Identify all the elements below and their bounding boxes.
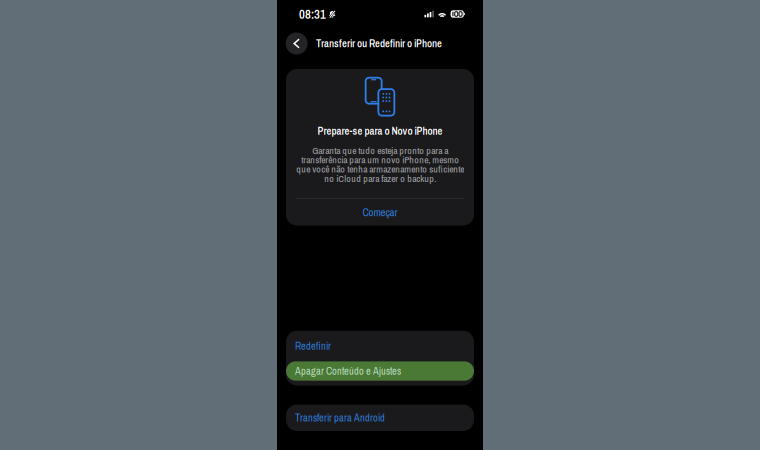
staticText: Transferir ou Redefinir o iPhone	[316, 36, 442, 51]
staticText: Começar	[362, 205, 397, 219]
staticText: Prepare-se para o Novo iPhone	[317, 124, 442, 138]
staticText: Redefinir	[295, 339, 331, 353]
button[interactable]: Voltar	[286, 32, 308, 54]
staticText: Apagar Conteúdo e Ajustes	[295, 364, 401, 378]
staticText: Transferir para Android	[295, 411, 385, 425]
staticText: 08:31	[299, 5, 326, 23]
button[interactable]: Começar	[286, 199, 474, 226]
button[interactable]: Apagar Conteúdo e Ajustes	[286, 361, 474, 381]
staticText: Garanta que tudo esteja pronto para a tr…	[296, 144, 464, 185]
button[interactable]: Transferir para Android	[286, 404, 474, 431]
button[interactable]: Redefinir	[286, 331, 474, 361]
